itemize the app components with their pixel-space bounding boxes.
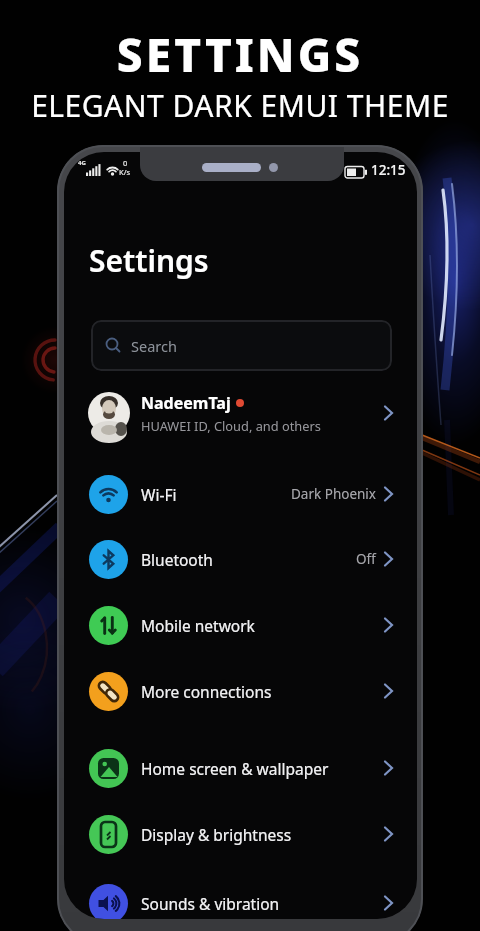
staticText: Off — [356, 550, 376, 568]
button[interactable]: Wi-Fi — [88, 461, 396, 527]
staticText: Search — [131, 336, 177, 356]
button[interactable]: Display & brightness — [88, 801, 396, 867]
button[interactable]: Sounds & vibration — [88, 870, 396, 919]
staticText: Sounds & vibration — [141, 893, 280, 914]
staticText: K/s — [119, 167, 131, 177]
staticText: HUAWEI ID, Cloud, and others — [141, 417, 321, 434]
staticText: 12:15 — [371, 161, 406, 179]
staticText: Wi-Fi — [141, 484, 177, 505]
staticText: 0 — [123, 158, 128, 168]
button[interactable]: NadeemTaj — [84, 385, 396, 441]
staticText: SETTINGS — [0, 23, 480, 86]
button[interactable]: Home screen & wallpaper — [88, 735, 396, 801]
button[interactable]: Mobile network — [88, 592, 396, 658]
staticText: % — [335, 163, 343, 175]
button[interactable]: Search — [91, 320, 392, 371]
staticText: More connections — [141, 681, 272, 702]
staticText: Display & brightness — [141, 824, 292, 845]
staticText: Settings — [89, 240, 209, 281]
staticText: ELEGANT DARK EMUI THEME — [0, 85, 480, 126]
button[interactable]: More connections — [88, 658, 396, 724]
staticText: NadeemTaj — [141, 392, 231, 414]
staticText: Bluetooth — [141, 549, 213, 570]
button[interactable]: Bluetooth — [88, 526, 396, 592]
staticText: Dark Phoenix — [291, 485, 376, 503]
staticText: Home screen & wallpaper — [141, 758, 329, 779]
staticText: 4G — [78, 159, 86, 167]
staticText: Mobile network — [141, 615, 255, 636]
